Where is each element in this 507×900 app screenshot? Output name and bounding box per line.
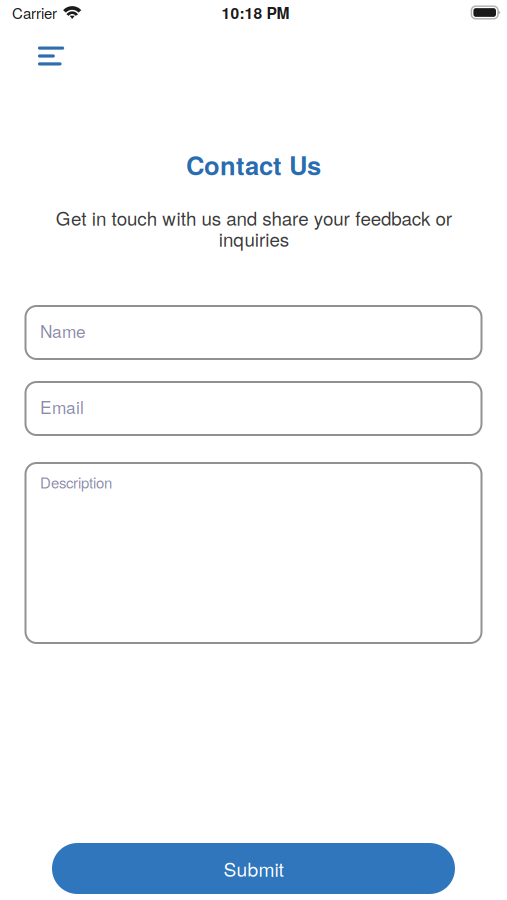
staticText: 10:18 PM [221,1,289,24]
staticText: Get in touch with us and share your feed… [55,204,451,252]
staticText: Description [40,471,112,493]
button[interactable]: Submit [52,843,455,894]
staticText: Contact Us [186,146,321,183]
staticText: Carrier [12,2,57,23]
staticText: Email [40,394,84,419]
button[interactable]: Menu [0,25,80,75]
staticText: Submit [223,855,283,882]
staticText: Name [40,318,86,343]
